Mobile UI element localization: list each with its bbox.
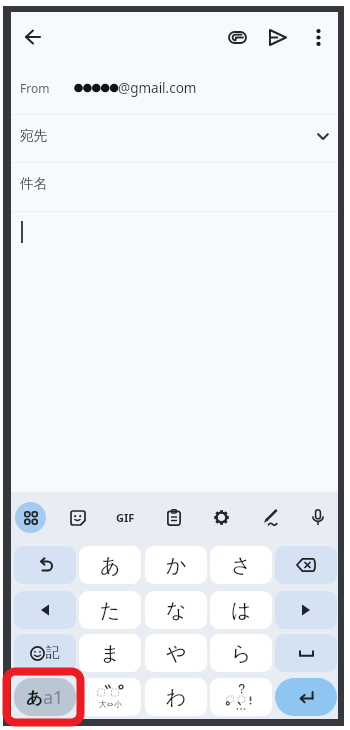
button[interactable] — [15, 502, 46, 533]
button[interactable]: 宛先 — [20, 124, 329, 146]
button[interactable] — [210, 678, 272, 716]
button[interactable]: は — [210, 591, 272, 629]
button[interactable] — [223, 23, 251, 51]
button[interactable]: GIF — [109, 504, 141, 531]
button[interactable]: 大⇔小 — [79, 678, 141, 716]
staticText: @gmail.com — [118, 79, 197, 97]
button[interactable] — [256, 504, 283, 531]
button[interactable] — [14, 546, 76, 584]
button[interactable] — [275, 591, 337, 629]
button[interactable] — [19, 23, 47, 51]
button[interactable]: ら — [210, 634, 272, 672]
button[interactable]: あ — [14, 678, 76, 716]
staticText: ら — [231, 641, 252, 666]
button[interactable]: や — [145, 634, 207, 672]
staticText: a1 — [43, 685, 64, 710]
button[interactable]: な — [145, 591, 207, 629]
staticText: 記 — [46, 644, 60, 662]
staticText: あ — [100, 553, 121, 578]
staticText: あ — [26, 687, 43, 708]
staticText: 宛先 — [20, 127, 47, 144]
staticText: GIF — [116, 510, 135, 525]
staticText: や — [166, 641, 187, 666]
button[interactable] — [304, 504, 331, 531]
button[interactable] — [264, 23, 292, 51]
button[interactable] — [208, 504, 235, 531]
staticText: さ — [231, 553, 252, 578]
button[interactable]: あ — [79, 546, 141, 584]
staticText: 大⇔小 — [99, 699, 122, 709]
staticText: わ — [166, 685, 187, 710]
button[interactable] — [275, 546, 337, 584]
staticText: From — [20, 80, 50, 96]
button[interactable] — [14, 591, 76, 629]
button[interactable]: 記 — [14, 634, 76, 672]
button[interactable]: 件名 — [20, 172, 329, 194]
button[interactable]: ま — [79, 634, 141, 672]
staticText: 件名 — [20, 175, 47, 192]
staticText: ま — [100, 641, 121, 666]
button[interactable] — [64, 504, 91, 531]
button[interactable] — [160, 504, 187, 531]
button[interactable] — [275, 634, 337, 672]
button[interactable]: か — [145, 546, 207, 584]
button[interactable] — [275, 678, 337, 716]
button[interactable]: さ — [210, 546, 272, 584]
staticText: か — [166, 553, 187, 578]
button[interactable] — [304, 23, 332, 51]
button[interactable]: た — [79, 591, 141, 629]
staticText: な — [166, 598, 187, 623]
staticText: は — [231, 598, 252, 623]
staticText: た — [100, 598, 121, 623]
button[interactable]: わ — [145, 678, 207, 716]
button[interactable]: From — [20, 78, 320, 98]
